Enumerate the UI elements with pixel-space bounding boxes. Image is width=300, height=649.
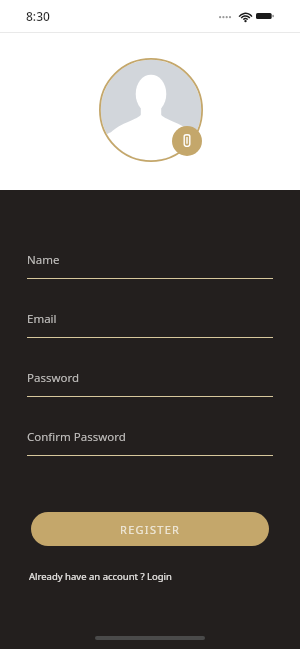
staticText: Password bbox=[27, 370, 80, 386]
staticText: Confirm Password bbox=[27, 429, 126, 445]
button[interactable]: Attach photo bbox=[172, 126, 202, 156]
staticText: Email bbox=[27, 311, 57, 327]
staticText: REGISTER bbox=[120, 522, 181, 537]
button[interactable]: Password bbox=[27, 370, 273, 397]
staticText: Already have an account ? Login bbox=[29, 570, 172, 583]
staticText: Name bbox=[27, 252, 60, 268]
button[interactable]: REGISTER bbox=[31, 512, 269, 546]
button[interactable]: Confirm Password bbox=[27, 429, 273, 456]
button[interactable]: Profile photo bbox=[99, 58, 203, 162]
button[interactable]: Already have an account ? Login bbox=[29, 570, 172, 583]
button[interactable]: Email bbox=[27, 311, 273, 338]
button[interactable]: Name bbox=[27, 252, 273, 279]
staticText: 8:30 bbox=[26, 8, 50, 24]
